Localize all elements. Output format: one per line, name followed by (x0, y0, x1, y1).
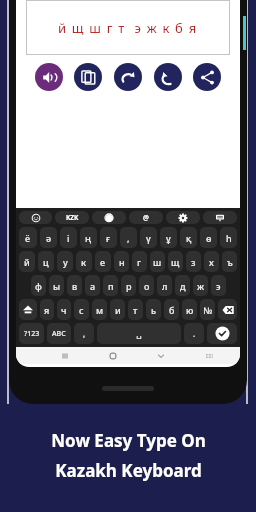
button[interactable]: һ (220, 227, 237, 248)
button[interactable]: ?123 (19, 323, 44, 344)
button[interactable]: ү (140, 227, 157, 248)
button[interactable]: й щ ш г т э ж к б я (26, 0, 230, 55)
staticText: и (115, 304, 121, 316)
staticText: ь (151, 304, 157, 316)
button[interactable]: и (110, 299, 125, 320)
button[interactable]: з (186, 251, 201, 272)
staticText: й щ ш г т э ж к б я (58, 19, 198, 37)
staticText: б (169, 304, 175, 316)
button[interactable]: Backspace (218, 299, 237, 320)
button[interactable]: palette (92, 211, 126, 224)
button[interactable]: в (67, 275, 82, 296)
button[interactable]: ц (38, 251, 54, 272)
button[interactable]: Home (89, 347, 137, 364)
button[interactable]: ұ (160, 227, 177, 248)
button[interactable]: @ (129, 211, 163, 224)
staticText: й (24, 256, 30, 268)
button[interactable]: с (74, 299, 89, 320)
button[interactable]: э (211, 275, 226, 296)
button[interactable]: й (19, 251, 35, 272)
button[interactable]: Switch input (185, 347, 233, 364)
staticText: № (203, 304, 213, 316)
staticText: . (193, 328, 196, 339)
button[interactable]: Recents (41, 347, 89, 364)
staticText: ё (25, 232, 31, 244)
staticText: л (162, 280, 168, 292)
staticText: п (108, 280, 114, 292)
button[interactable]: я (40, 299, 54, 320)
button[interactable]: Speak (35, 63, 63, 91)
button[interactable]: . (184, 323, 204, 344)
button[interactable]: н (114, 251, 129, 272)
button[interactable]: б (164, 299, 179, 320)
button[interactable]: п (103, 275, 118, 296)
button[interactable]: Copy (74, 63, 102, 91)
button[interactable]: ␣ (97, 323, 181, 344)
staticText: а (90, 280, 96, 292)
button[interactable]: у (57, 251, 73, 272)
staticText: қ (186, 232, 192, 244)
button[interactable]: ё (19, 227, 37, 248)
staticText: с (79, 304, 84, 316)
staticText: һ (226, 232, 232, 244)
button[interactable]: к (76, 251, 92, 272)
staticText: , (127, 232, 130, 244)
staticText: ф (35, 280, 42, 292)
button[interactable]: № (200, 299, 215, 320)
button[interactable]: т (128, 299, 143, 320)
button[interactable]: , (120, 227, 137, 248)
button[interactable]: ш (150, 251, 165, 272)
button[interactable]: ә (40, 227, 57, 248)
button[interactable]: ө (200, 227, 217, 248)
staticText: ы (53, 280, 61, 292)
button[interactable]: Hide keyboard (137, 347, 185, 364)
button[interactable]: ф (31, 275, 46, 296)
button[interactable]: л (157, 275, 172, 296)
staticText: ю (186, 304, 194, 316)
button[interactable]: щ (168, 251, 183, 272)
button[interactable]: ң (80, 227, 97, 248)
button[interactable]: а (85, 275, 100, 296)
button[interactable]: ь (146, 299, 161, 320)
button[interactable]: gear (166, 211, 200, 224)
button[interactable]: Enter (207, 323, 237, 344)
staticText: д (180, 280, 186, 292)
button[interactable]: о (139, 275, 154, 296)
staticText: ш (153, 256, 162, 268)
staticText: ч (61, 304, 67, 316)
button[interactable]: ю (182, 299, 197, 320)
staticText: Now Easy Type On (51, 429, 206, 452)
staticText: ъ (227, 256, 233, 268)
button[interactable]: , (74, 323, 94, 344)
button[interactable]: Shift (19, 299, 37, 320)
button[interactable]: clip (203, 211, 237, 224)
button[interactable]: г (132, 251, 147, 272)
button[interactable]: д (175, 275, 190, 296)
button[interactable]: emoji (19, 211, 52, 224)
button[interactable]: Redo (114, 63, 142, 91)
staticText: ц (43, 256, 49, 268)
staticText: і (67, 232, 70, 244)
button[interactable]: е (95, 251, 111, 272)
button[interactable]: Share (193, 63, 221, 91)
button[interactable]: KZK (55, 211, 89, 224)
staticText: ү (146, 232, 151, 244)
button[interactable]: м (92, 299, 107, 320)
staticText: в (72, 280, 78, 292)
button[interactable]: ж (193, 275, 208, 296)
button[interactable]: қ (180, 227, 197, 248)
button[interactable]: х (204, 251, 219, 272)
button[interactable]: ъ (222, 251, 237, 272)
staticText: @ (143, 213, 149, 222)
staticText: ?123 (24, 329, 40, 339)
button[interactable]: ғ (100, 227, 117, 248)
button[interactable]: ч (57, 299, 71, 320)
button[interactable]: Undo (154, 63, 182, 91)
button[interactable]: ABC (47, 323, 71, 344)
staticText: ң (85, 232, 92, 244)
staticText: э (216, 280, 221, 292)
button[interactable]: р (121, 275, 136, 296)
button[interactable]: і (60, 227, 77, 248)
button[interactable]: ы (49, 275, 64, 296)
staticText: KZK (66, 213, 79, 222)
